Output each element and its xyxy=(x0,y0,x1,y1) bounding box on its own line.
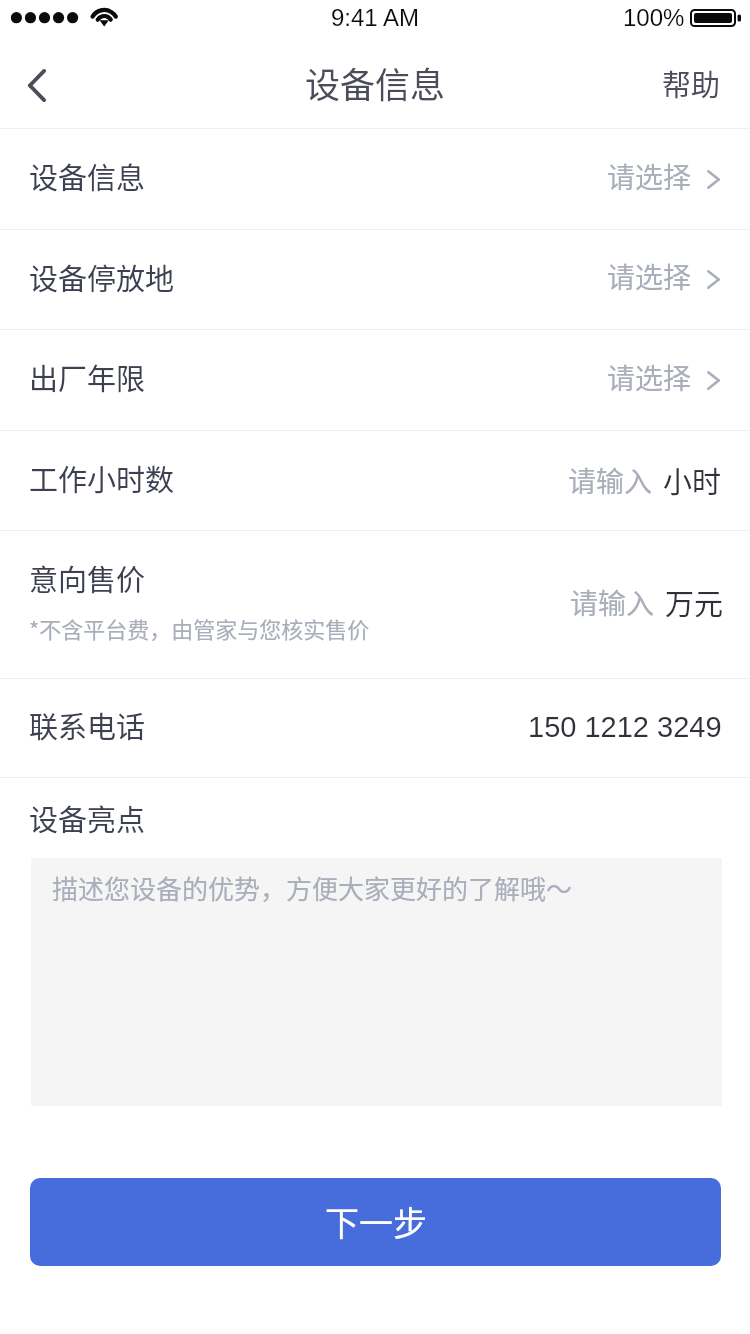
staticText: 小时 xyxy=(663,459,722,501)
staticText: 设备信息 xyxy=(29,155,146,197)
staticText: 描述您设备的优势，方便大家更好的了解哦～ xyxy=(52,869,573,907)
staticText: 100% xyxy=(623,4,685,31)
button[interactable]: 出厂年限 xyxy=(0,330,750,430)
button[interactable]: 下一步 xyxy=(30,1178,721,1266)
button[interactable]: 联系电话 xyxy=(0,679,750,777)
button[interactable]: 帮助 xyxy=(629,40,750,128)
button[interactable]: Back xyxy=(0,40,78,128)
staticText: 出厂年限 xyxy=(29,356,146,398)
staticText: 帮助 xyxy=(662,62,721,104)
staticText: 设备亮点 xyxy=(29,797,146,839)
staticText: 万元 xyxy=(665,581,724,623)
staticText: 请选择 xyxy=(607,256,692,297)
button[interactable]: 意向售价 xyxy=(0,531,750,678)
staticText: 请选择 xyxy=(607,156,692,197)
staticText: 下一步 xyxy=(325,1197,427,1246)
staticText: 请输入 xyxy=(570,582,655,623)
button[interactable]: 描述您设备的优势，方便大家更好的了解哦～ xyxy=(31,858,722,1106)
staticText: 9:41 AM xyxy=(331,4,420,31)
staticText: 请选择 xyxy=(607,357,692,398)
staticText: 联系电话 xyxy=(29,704,146,746)
button[interactable]: 设备停放地 xyxy=(0,230,750,329)
staticText: 意向售价 xyxy=(29,557,146,599)
staticText: 设备停放地 xyxy=(29,256,175,298)
staticText: 请输入 xyxy=(568,460,653,501)
staticText: 设备信息 xyxy=(305,57,446,108)
button[interactable]: 设备信息 xyxy=(0,129,750,229)
staticText: 150 1212 3249 xyxy=(528,711,722,743)
staticText: 工作小时数 xyxy=(29,457,175,499)
button[interactable]: 工作小时数 xyxy=(0,431,750,530)
staticText: *不含平台费，由管家与您核实售价 xyxy=(29,612,370,644)
